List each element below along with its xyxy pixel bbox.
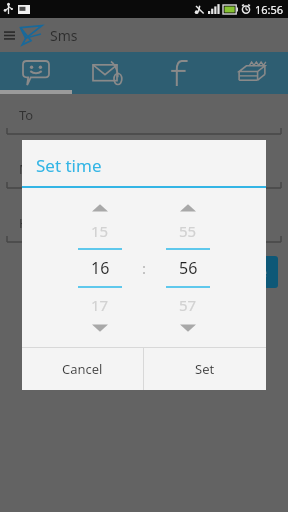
- staticText: 56: [179, 257, 198, 279]
- staticText: Hour: [19, 214, 50, 232]
- button[interactable]: [216, 52, 288, 94]
- staticText: 15: [91, 221, 109, 241]
- button[interactable]: Save: [230, 256, 278, 288]
- button[interactable]: Minutes: [157, 203, 219, 333]
- staticText: 16:56: [255, 2, 284, 17]
- staticText: Set time: [36, 154, 102, 177]
- staticText: :: [142, 258, 147, 278]
- button[interactable]: [72, 52, 144, 94]
- staticText: 57: [179, 295, 197, 315]
- staticText: To: [19, 106, 34, 124]
- staticText: Save: [241, 264, 268, 280]
- button[interactable]: Cancel: [22, 348, 143, 390]
- button[interactable]: [0, 52, 72, 94]
- staticText: Cancel: [62, 360, 103, 378]
- staticText: Sms: [50, 26, 78, 45]
- staticText: 17: [91, 295, 109, 315]
- button[interactable]: Hours: [69, 203, 131, 333]
- staticText: Set: [195, 360, 215, 378]
- staticText: Message: [19, 160, 74, 178]
- staticText: 16: [91, 257, 110, 279]
- button[interactable]: Set: [144, 348, 266, 390]
- button[interactable]: Menu: [0, 18, 18, 52]
- button[interactable]: [144, 52, 216, 94]
- staticText: 55: [179, 221, 197, 241]
